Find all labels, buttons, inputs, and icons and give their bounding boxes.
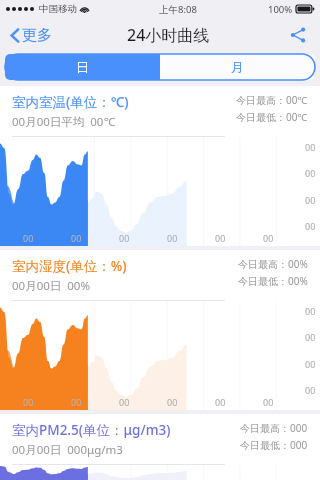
staticText: 今日最低：00% — [238, 274, 308, 288]
staticText: 00月00日 000μg/m3 — [12, 442, 123, 458]
staticText: 00 — [305, 331, 316, 343]
staticText: 室内PM2.5(单位：μg/m3) — [12, 421, 171, 439]
staticText: 00 — [167, 396, 178, 408]
button[interactable]: 日 — [5, 54, 160, 80]
staticText: 中国移动 — [39, 3, 77, 15]
staticText: 00 — [305, 167, 316, 179]
button[interactable]: 室内湿度(单位：%) — [0, 250, 320, 410]
staticText: 00 — [215, 396, 226, 408]
staticText: 24小时曲线 — [127, 24, 210, 46]
staticText: 00 — [263, 232, 274, 244]
staticText: 00 — [23, 396, 34, 408]
staticText: 00 — [305, 194, 316, 206]
staticText: 00 — [305, 384, 316, 396]
staticText: 月 — [231, 59, 244, 75]
button[interactable]: 月 — [160, 54, 315, 80]
staticText: 00 — [119, 232, 130, 244]
staticText: 室内湿度(单位：%) — [12, 257, 127, 275]
button[interactable]: 室内室温(单位：℃) — [0, 86, 320, 246]
staticText: 00 — [263, 396, 274, 408]
staticText: 今日最高：000 — [240, 421, 308, 435]
staticText: 00月00日 00% — [12, 278, 91, 294]
staticText: 00月00日平均 00℃ — [12, 114, 115, 130]
staticText: 今日最低：00℃ — [236, 110, 308, 124]
button[interactable]: Share — [284, 21, 312, 49]
staticText: 00 — [167, 232, 178, 244]
staticText: 今日最高：00% — [238, 257, 308, 271]
staticText: 上午8:08 — [159, 3, 197, 16]
staticText: 00 — [71, 232, 82, 244]
staticText: 00 — [305, 220, 316, 232]
staticText: 00 — [305, 358, 316, 370]
staticText: 00 — [215, 232, 226, 244]
button[interactable]: 室内PM2.5(单位：μg/m3) — [0, 414, 320, 480]
staticText: 今日最高：00℃ — [236, 93, 308, 107]
button[interactable]: 更多 — [8, 22, 54, 49]
staticText: 日 — [76, 59, 89, 75]
staticText: 00 — [23, 232, 34, 244]
staticText: 00 — [119, 396, 130, 408]
staticText: 00 — [305, 305, 316, 317]
staticText: 今日最低：000 — [240, 438, 308, 452]
staticText: 100% — [268, 3, 293, 16]
staticText: 更多 — [22, 26, 52, 45]
staticText: 00 — [305, 141, 316, 153]
staticText: 室内室温(单位：℃) — [12, 93, 129, 111]
staticText: 00 — [71, 396, 82, 408]
